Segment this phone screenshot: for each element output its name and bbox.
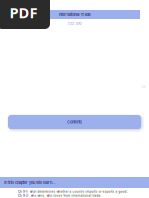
staticText: Ch 9-2: (18, 194, 29, 197)
staticText: International Trade (58, 12, 90, 17)
staticText: In this chapter you will learn… (4, 180, 56, 185)
staticText: PDF (9, 3, 37, 22)
staticText: Ch 9-1: (18, 190, 28, 193)
button[interactable]: Contents (8, 115, 141, 129)
staticText: Contents (67, 120, 82, 124)
staticText: 1/3 (141, 85, 145, 89)
button[interactable]: PDF document (0, 0, 50, 29)
staticText: who wins, who loses from international t… (30, 194, 101, 197)
staticText: ECO 200 (67, 21, 81, 25)
staticText: what determines whether a country import… (29, 190, 127, 193)
